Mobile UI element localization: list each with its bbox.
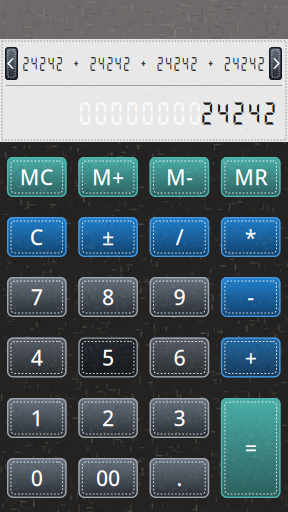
- staticText: 5: [102, 343, 114, 372]
- button[interactable]: 00: [78, 458, 138, 498]
- staticText: 9: [173, 283, 185, 311]
- staticText: M+: [92, 163, 124, 191]
- staticText: =: [245, 434, 257, 462]
- staticText: M-: [166, 163, 193, 191]
- button[interactable]: C: [7, 217, 67, 257]
- staticText: 0: [31, 464, 43, 492]
- button[interactable]: M-: [150, 157, 209, 197]
- button[interactable]: M+: [78, 157, 138, 197]
- button[interactable]: *: [221, 217, 280, 257]
- staticText: .: [176, 464, 182, 492]
- button[interactable]: 4: [7, 337, 67, 377]
- button[interactable]: 8: [78, 277, 138, 317]
- button[interactable]: 9: [150, 277, 209, 317]
- button[interactable]: Next entry: [269, 47, 282, 80]
- staticText: ±: [102, 223, 114, 251]
- staticText: MR: [234, 163, 267, 191]
- staticText: 4: [31, 343, 43, 372]
- button[interactable]: .: [150, 458, 209, 498]
- button[interactable]: ±: [78, 217, 138, 257]
- staticText: -: [247, 283, 254, 311]
- staticText: 24242: [200, 99, 288, 139]
- staticText: 00: [96, 464, 120, 492]
- button[interactable]: +: [221, 337, 280, 377]
- staticText: 1: [31, 404, 43, 432]
- staticText: MC: [20, 163, 54, 191]
- staticText: 24242 + 24242 + 24242 + 24242: [0, 54, 288, 73]
- button[interactable]: =: [221, 398, 280, 498]
- staticText: +: [245, 343, 257, 372]
- staticText: 2: [102, 404, 114, 432]
- button[interactable]: Previous entry: [5, 47, 18, 80]
- button[interactable]: 0: [7, 458, 67, 498]
- staticText: 7: [31, 283, 43, 311]
- button[interactable]: /: [150, 217, 209, 257]
- staticText: 3: [173, 404, 185, 432]
- button[interactable]: 1: [7, 398, 67, 438]
- staticText: /: [175, 223, 183, 251]
- button[interactable]: 6: [150, 337, 209, 377]
- button[interactable]: 7: [7, 277, 67, 317]
- staticText: *: [245, 223, 257, 251]
- staticText: 8: [102, 283, 114, 311]
- staticText: 00000000: [77, 99, 277, 139]
- button[interactable]: -: [221, 277, 280, 317]
- button[interactable]: MR: [221, 157, 280, 197]
- staticText: C: [30, 223, 44, 251]
- button[interactable]: 2: [78, 398, 138, 438]
- button[interactable]: 5: [78, 337, 138, 377]
- button[interactable]: 3: [150, 398, 209, 438]
- staticText: 6: [173, 343, 185, 372]
- button[interactable]: MC: [7, 157, 67, 197]
